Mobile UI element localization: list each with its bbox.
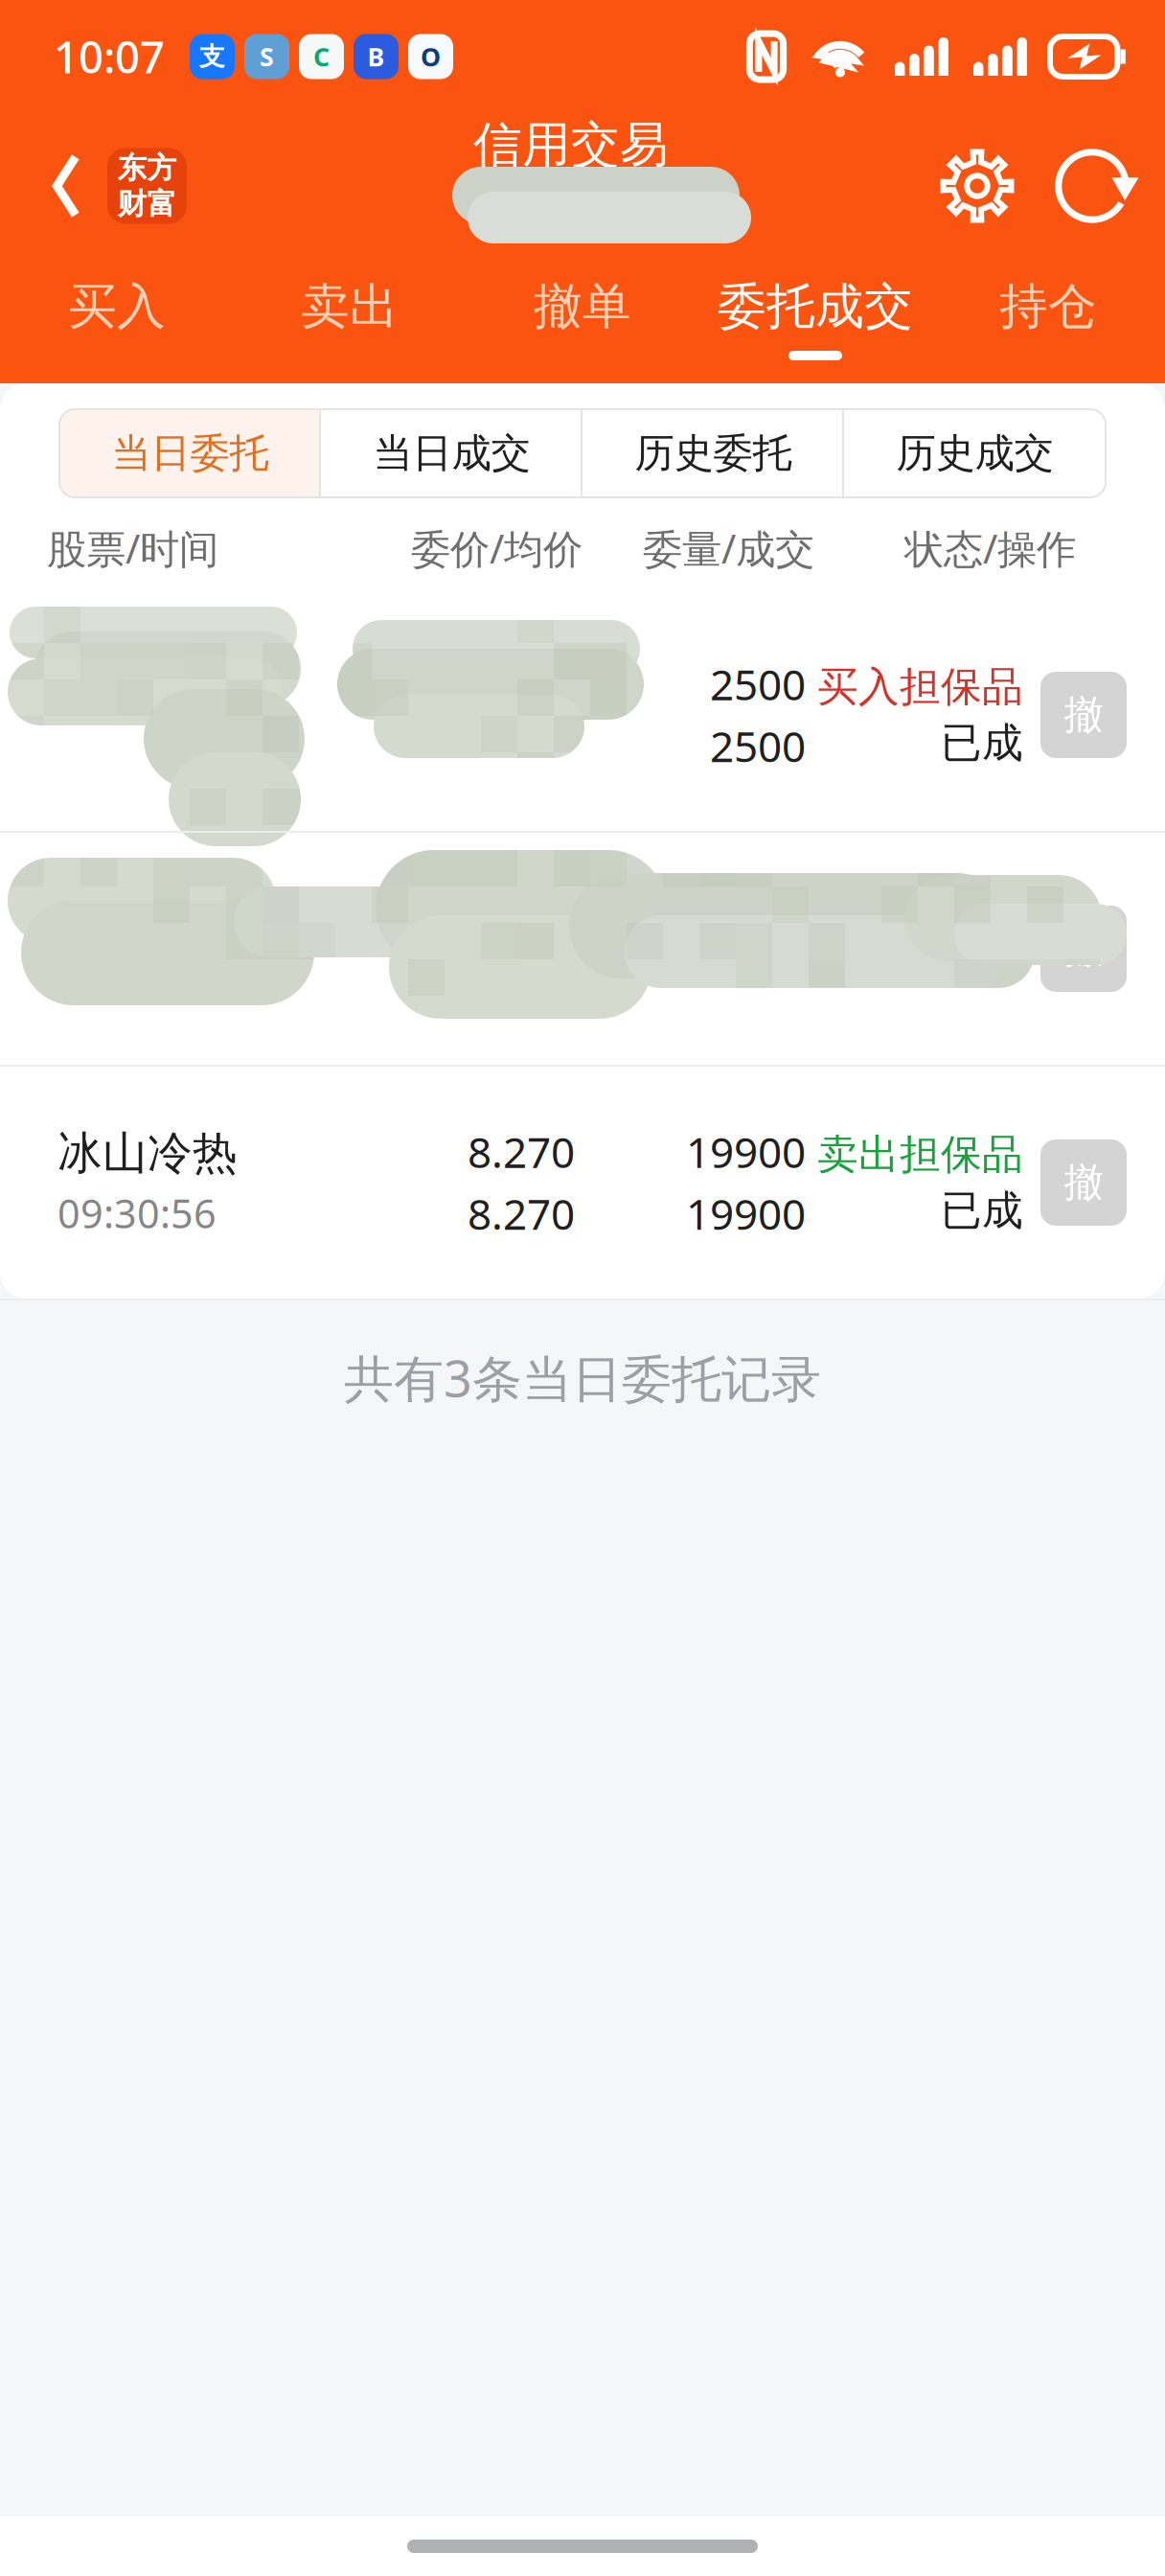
button[interactable]: 撤: [1040, 1139, 1127, 1226]
staticText: 8.270: [468, 1185, 575, 1241]
button[interactable]: 撤单: [466, 259, 699, 383]
staticText: 冰山冷热: [57, 1126, 238, 1181]
staticText: S: [260, 40, 274, 74]
button[interactable]: 历史委托: [582, 409, 844, 497]
staticText: C: [313, 40, 330, 74]
button[interactable]: 撤: [1040, 906, 1127, 992]
staticText: 当日成交: [373, 429, 530, 478]
staticText: 撤: [1064, 1158, 1103, 1207]
staticText: 卖出担保品: [817, 1129, 1023, 1180]
staticText: 19900: [686, 1124, 806, 1180]
button[interactable]: 买入: [0, 259, 233, 383]
staticText: 撤单: [534, 277, 631, 336]
staticText: 状态/操作: [904, 522, 1076, 575]
button[interactable]: 持仓: [932, 259, 1165, 383]
staticText: 委价/均价: [411, 522, 582, 575]
staticText: 2500: [710, 656, 806, 712]
staticText: 支: [199, 41, 225, 72]
button[interactable]: Back: [27, 128, 107, 243]
staticText: 历史成交: [896, 429, 1053, 478]
staticText: 已成: [941, 1185, 1023, 1236]
button[interactable]: 撤: [1040, 672, 1127, 758]
staticText: 买入担保品: [817, 662, 1023, 712]
staticText: 信用交易: [473, 115, 669, 175]
button[interactable]: 卖出: [233, 259, 466, 383]
staticText: 已成: [941, 718, 1023, 768]
button[interactable]: 委托成交: [699, 259, 932, 383]
staticText: 委托成交: [718, 277, 913, 336]
staticText: 卖出: [301, 277, 399, 336]
staticText: 持仓: [999, 277, 1097, 336]
staticText: 09:30:56: [57, 1187, 217, 1239]
staticText: 2500: [710, 718, 806, 774]
staticText: O: [421, 40, 441, 74]
staticText: 历史委托: [635, 429, 792, 478]
staticText: 撤: [1064, 691, 1103, 739]
staticText: 股票/时间: [47, 522, 218, 575]
button[interactable]: 当日成交: [321, 409, 582, 497]
staticText: B: [367, 40, 385, 74]
staticText: 撤: [1064, 924, 1103, 973]
staticText: 共有3条当日委托记录: [344, 1345, 821, 1411]
button[interactable]: 历史成交: [844, 409, 1106, 497]
staticText: 8.270: [468, 1124, 575, 1180]
staticText: 当日委托: [112, 429, 269, 478]
button[interactable]: 当日委托: [59, 409, 321, 497]
button[interactable]: Settings: [927, 132, 1027, 240]
staticText: 买入: [68, 277, 166, 336]
staticText: 委量/成交: [643, 522, 814, 575]
staticText: 东方 财富: [117, 150, 177, 222]
staticText: 10:07: [54, 28, 165, 85]
staticText: 19900: [686, 1185, 806, 1241]
button[interactable]: Refresh: [1042, 132, 1142, 240]
